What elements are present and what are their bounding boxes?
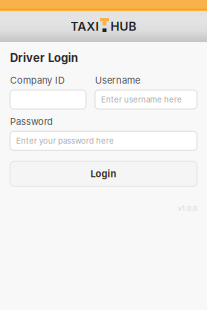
button[interactable]: Login [10,161,197,186]
staticText: Driver Login [10,51,78,65]
staticText: Enter your password here [16,136,114,146]
staticText: TAXI [70,19,98,34]
staticText: Login [90,168,116,179]
staticText: v1.0.0 [178,204,197,212]
staticText: Enter username here [101,95,182,104]
staticText: Company ID [10,75,65,86]
staticText: Password [10,116,53,127]
staticText: Username [95,75,140,86]
staticText: HUB [110,19,136,34]
